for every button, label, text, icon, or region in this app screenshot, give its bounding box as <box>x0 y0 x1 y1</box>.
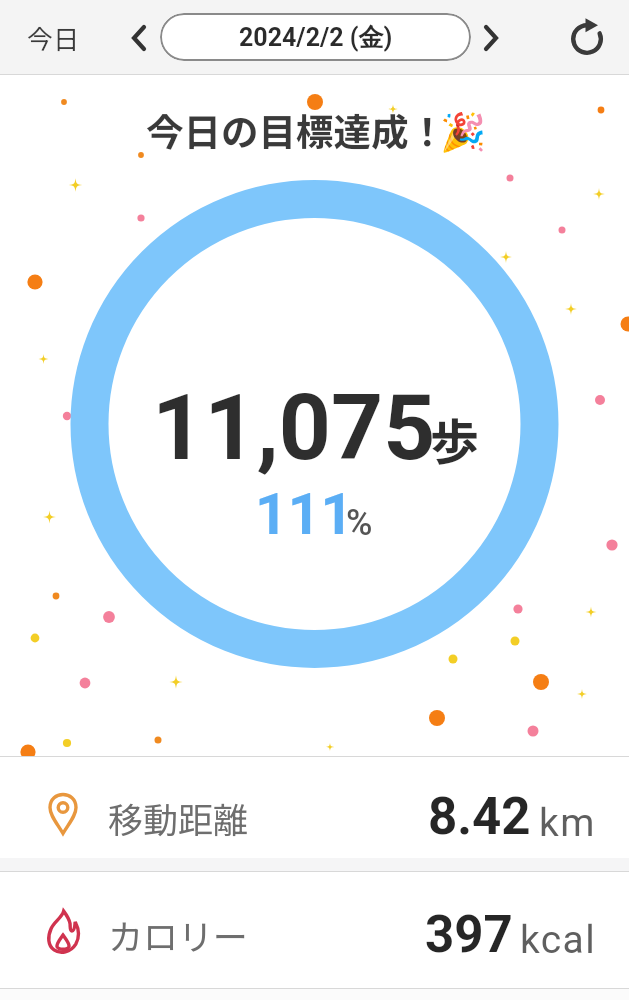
button[interactable]: 今日 <box>0 1 106 75</box>
button[interactable]: Next day <box>471 1 511 75</box>
button[interactable]: Previous day <box>108 1 169 75</box>
button[interactable]: カロリー <box>0 872 629 988</box>
staticText: 2024/2/2 (金) <box>239 22 393 53</box>
staticText: 移動距離 <box>108 792 249 843</box>
staticText: 397 <box>425 905 513 965</box>
staticText: 111 <box>255 481 354 548</box>
button[interactable]: 2024/2/2 (金) <box>160 13 471 61</box>
staticText: カロリー <box>108 909 249 960</box>
staticText: 今日の目標達成！ <box>146 102 446 156</box>
button[interactable]: Refresh <box>545 1 629 75</box>
button[interactable]: 移動距離 <box>0 757 629 858</box>
staticText: 歩 <box>430 403 480 474</box>
staticText: km <box>539 800 596 846</box>
staticText: 11,075 <box>152 375 436 482</box>
staticText: 🎉 <box>440 111 487 154</box>
staticText: kcal <box>520 917 597 963</box>
staticText: % <box>346 502 373 544</box>
staticText: 8.42 <box>428 787 531 847</box>
staticText: 今日 <box>27 19 80 57</box>
